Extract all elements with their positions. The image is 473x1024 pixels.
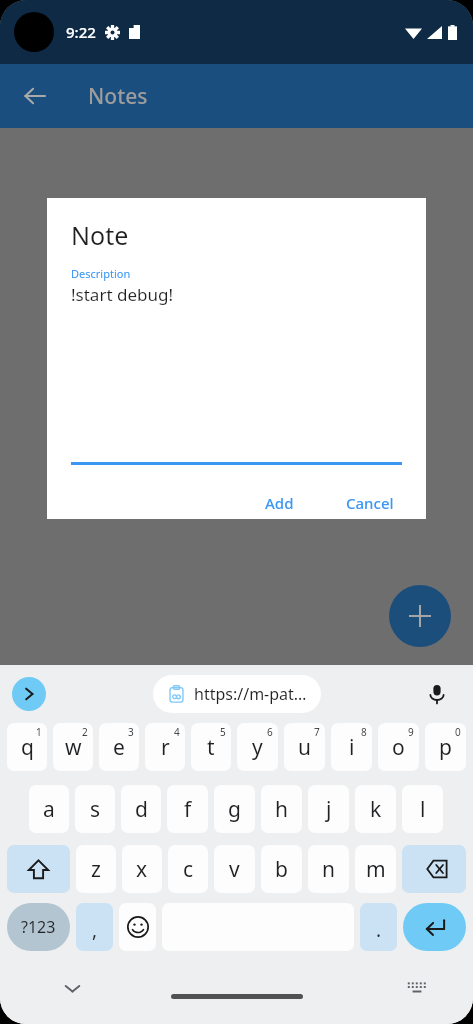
staticText: 9 — [408, 725, 414, 739]
button[interactable]: i — [331, 723, 372, 771]
button[interactable]: c — [168, 845, 208, 893]
staticText: s — [90, 795, 101, 824]
button[interactable]: r — [145, 723, 185, 771]
button[interactable]: d — [121, 785, 161, 833]
staticText: 6 — [267, 725, 273, 739]
button[interactable]: w — [53, 723, 93, 771]
button[interactable]: j — [308, 785, 349, 833]
button[interactable]: u — [284, 723, 325, 771]
button[interactable]: Voice input — [419, 676, 455, 712]
button[interactable]: Shift — [7, 845, 70, 893]
button[interactable]: o — [378, 723, 419, 771]
button[interactable]: f — [167, 785, 208, 833]
button[interactable]: . — [360, 903, 397, 951]
button[interactable]: h — [261, 785, 302, 833]
staticText: Note — [71, 218, 129, 252]
button[interactable]: Hide keyboard — [52, 968, 92, 1008]
button[interactable]: Back — [12, 73, 58, 119]
staticText: t — [207, 733, 215, 762]
button[interactable]: n — [308, 845, 349, 893]
staticText: Notes — [88, 82, 148, 111]
button[interactable]: Expand suggestions — [12, 677, 46, 711]
button[interactable]: Cancel — [338, 487, 402, 519]
button[interactable]: g — [214, 785, 255, 833]
staticText: 1 — [36, 725, 42, 739]
staticText: p — [439, 733, 452, 762]
button[interactable]: v — [214, 845, 255, 893]
staticText: . — [376, 917, 382, 943]
staticText: 2 — [82, 725, 88, 739]
button[interactable]: https://m-pat… — [153, 675, 321, 713]
staticText: a — [43, 795, 55, 824]
button[interactable]: s — [75, 785, 115, 833]
staticText: k — [370, 795, 382, 824]
staticText: c — [183, 855, 194, 884]
staticText: r — [161, 733, 170, 762]
staticText: u — [298, 733, 311, 762]
staticText: 0 — [455, 725, 461, 739]
staticText: ?123 — [21, 916, 56, 938]
staticText: n — [322, 855, 335, 884]
staticText: b — [275, 855, 288, 884]
button[interactable]: ?123 — [7, 903, 70, 951]
button[interactable]: Switch keyboard — [397, 968, 437, 1008]
staticText: 4 — [174, 725, 180, 739]
staticText: !start debug! — [71, 283, 173, 306]
staticText: Cancel — [346, 493, 394, 513]
staticText: x — [136, 855, 148, 884]
button[interactable]: Backspace — [402, 845, 466, 893]
staticText: f — [184, 795, 192, 824]
staticText: v — [229, 855, 240, 884]
staticText: 5 — [220, 725, 226, 739]
button[interactable]: m — [355, 845, 396, 893]
button[interactable]: Emoji — [119, 903, 156, 951]
staticText: o — [392, 733, 405, 762]
staticText: l — [420, 795, 426, 824]
button[interactable]: x — [122, 845, 162, 893]
staticText: d — [135, 795, 148, 824]
button[interactable]: p — [425, 723, 466, 771]
button[interactable]: a — [29, 785, 69, 833]
staticText: Add — [265, 493, 294, 513]
staticText: e — [113, 733, 125, 762]
staticText: Description — [71, 266, 131, 281]
staticText: 7 — [314, 725, 320, 739]
staticText: 3 — [128, 725, 134, 739]
staticText: h — [275, 795, 288, 824]
button[interactable]: q — [7, 723, 47, 771]
staticText: z — [91, 855, 101, 884]
button[interactable]: Enter — [403, 903, 466, 951]
staticText: , — [92, 917, 98, 943]
button[interactable]: Add note — [389, 585, 451, 647]
staticText: g — [228, 795, 241, 824]
staticText: w — [65, 733, 82, 762]
staticText: q — [21, 733, 34, 762]
button[interactable]: t — [191, 723, 231, 771]
button[interactable]: k — [355, 785, 396, 833]
button[interactable]: z — [76, 845, 116, 893]
staticText: m — [366, 855, 386, 884]
staticText: https://m-pat… — [194, 683, 307, 705]
staticText: y — [252, 733, 263, 762]
button[interactable]: l — [402, 785, 443, 833]
staticText: 8 — [361, 725, 367, 739]
button[interactable]: b — [261, 845, 302, 893]
button[interactable]: e — [99, 723, 139, 771]
button[interactable]: y — [237, 723, 278, 771]
button[interactable]: Add — [257, 487, 302, 519]
button[interactable]: , — [76, 903, 113, 951]
staticText: j — [326, 795, 332, 824]
staticText: 9:22 — [66, 22, 96, 42]
staticText: i — [349, 733, 355, 762]
